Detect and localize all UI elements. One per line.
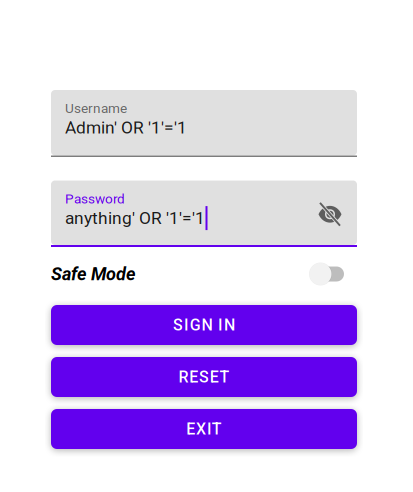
staticText: Password xyxy=(65,191,125,207)
button[interactable]: SIGN IN xyxy=(51,305,357,345)
button[interactable]: RESET xyxy=(51,357,357,397)
button[interactable]: EXIT xyxy=(51,409,357,449)
staticText: RESET xyxy=(178,368,230,386)
staticText: SIGN IN xyxy=(173,316,235,334)
staticText: EXIT xyxy=(186,420,222,438)
button[interactable]: Safe Mode xyxy=(309,262,357,286)
staticText: Safe Mode xyxy=(51,263,136,285)
staticText: Username xyxy=(65,100,127,116)
staticText: anything' OR '1'='1 xyxy=(65,208,205,228)
button[interactable]: Show password xyxy=(318,201,345,224)
staticText: Admin' OR '1'='1 xyxy=(65,117,187,138)
